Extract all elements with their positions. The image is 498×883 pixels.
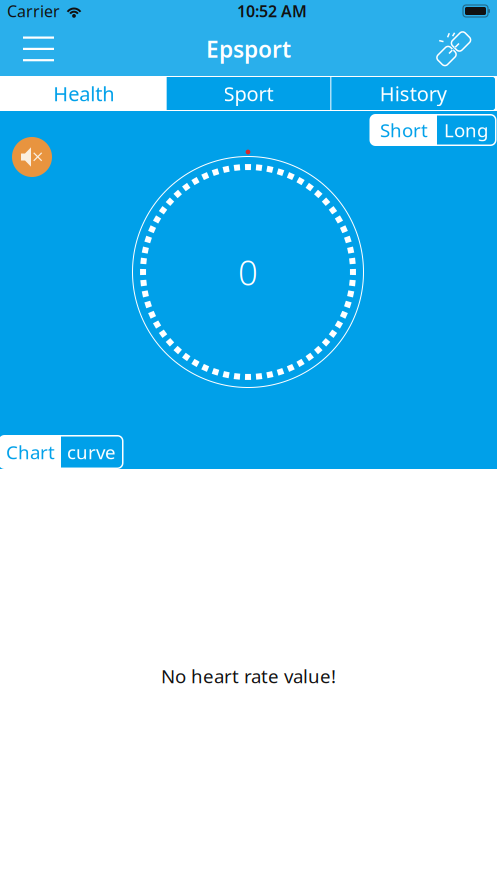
staticText: Epsport [206, 34, 291, 64]
staticText: History [380, 80, 447, 107]
button[interactable]: Sound off [12, 137, 52, 177]
button[interactable]: Health [2, 77, 166, 110]
staticText: Carrier [7, 0, 60, 22]
button[interactable]: Menu [16, 29, 61, 69]
staticText: curve [67, 440, 116, 464]
staticText: Long [444, 118, 488, 142]
button[interactable]: Long [437, 114, 495, 146]
button[interactable]: Disconnect device [429, 24, 477, 74]
staticText: No heart rate value! [161, 664, 336, 688]
button[interactable]: History [331, 77, 495, 110]
button[interactable]: Sport [167, 77, 330, 110]
staticText: 10:52 AM [237, 0, 307, 22]
button[interactable]: Short [371, 114, 437, 146]
staticText: Sport [223, 80, 273, 107]
staticText: 0 [238, 249, 258, 295]
button[interactable]: curve [61, 435, 122, 469]
staticText: Chart [6, 440, 55, 464]
staticText: Health [53, 80, 114, 107]
button[interactable]: Chart [0, 435, 61, 469]
staticText: Short [380, 118, 428, 142]
